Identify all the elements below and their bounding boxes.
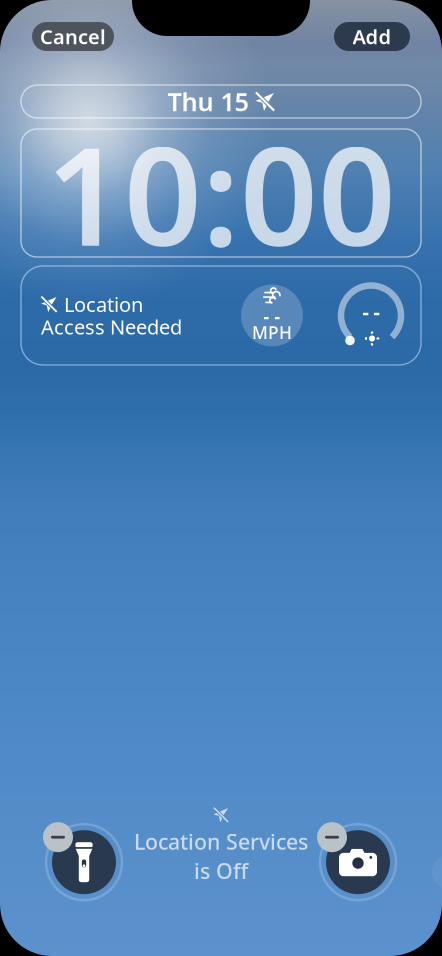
button[interactable]: Location	[21, 266, 421, 365]
staticText: - -	[362, 298, 379, 325]
staticText: MPH	[252, 321, 292, 344]
button[interactable]: Thu 15	[21, 85, 421, 118]
staticText: Location Services	[134, 827, 308, 856]
staticText: 10:00	[46, 103, 396, 283]
staticText: Cancel	[40, 23, 106, 50]
button[interactable]: Remove Flashlight	[43, 822, 73, 852]
staticText: Thu 15	[167, 85, 248, 118]
button[interactable]: Flashlight	[46, 824, 122, 900]
staticText: Location	[64, 291, 143, 317]
button[interactable]: Remove Camera	[317, 822, 347, 852]
staticText: - -	[263, 305, 280, 328]
staticText: Add	[352, 23, 391, 50]
button[interactable]: Camera	[320, 824, 396, 900]
button[interactable]: Add	[334, 22, 410, 51]
staticText: Access Needed	[41, 313, 182, 340]
staticText: is Off	[194, 857, 248, 885]
button[interactable]: 10:00	[21, 129, 421, 257]
button[interactable]: Cancel	[32, 22, 114, 51]
